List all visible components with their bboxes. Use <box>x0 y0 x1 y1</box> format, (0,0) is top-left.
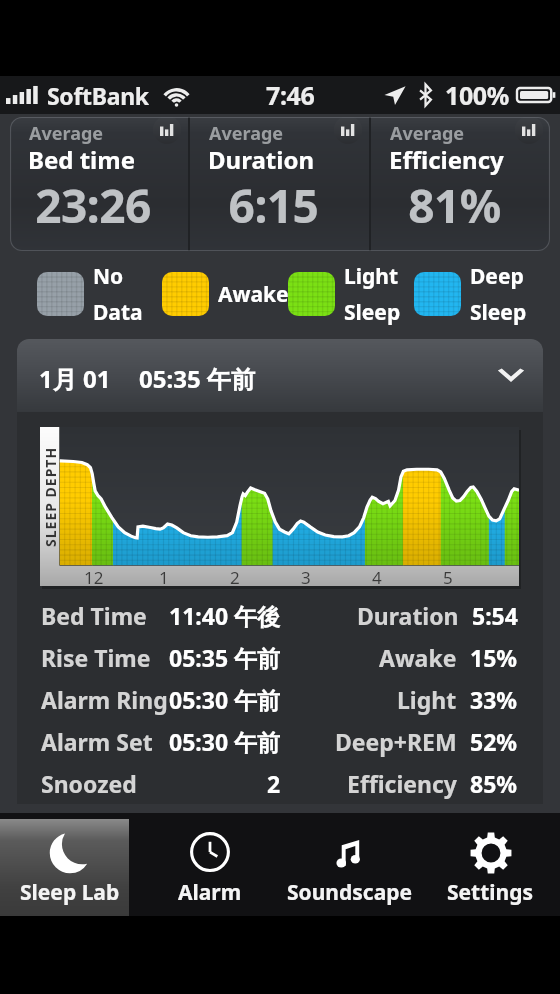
staticText: Duration <box>357 600 459 631</box>
staticText: Alarm Set <box>41 726 153 757</box>
button[interactable]: Show chart <box>334 117 362 144</box>
staticText: Average <box>29 121 104 146</box>
staticText: Rise Time <box>41 642 151 673</box>
staticText: 6:15 <box>190 174 357 237</box>
staticText: Average <box>209 121 284 146</box>
staticText: SLEEP DEPTH <box>41 446 60 547</box>
button[interactable]: Alarm Set <box>41 720 518 762</box>
staticText: 33% <box>470 684 518 715</box>
button[interactable]: Show chart <box>153 117 181 144</box>
staticText: No <box>93 262 124 291</box>
staticText: 1 <box>159 566 169 586</box>
button[interactable]: Average <box>371 117 550 251</box>
staticText: 05:35 午前 <box>139 362 255 395</box>
staticText: 52% <box>470 726 518 757</box>
staticText: 2 <box>267 768 281 799</box>
staticText: Sleep Lab <box>20 878 120 907</box>
staticText: Sleep <box>344 298 401 327</box>
button[interactable]: Snoozed <box>41 762 518 804</box>
staticText: Light <box>344 262 399 291</box>
staticText: 7:46 <box>266 78 315 112</box>
staticText: 15% <box>470 642 518 673</box>
button[interactable]: Show chart <box>515 117 543 144</box>
staticText: Awake <box>218 280 289 309</box>
button[interactable]: Deep <box>414 250 527 338</box>
staticText: 81% <box>371 174 538 237</box>
staticText: Deep <box>470 262 524 291</box>
button[interactable]: Alarm <box>140 813 280 916</box>
button[interactable]: Light <box>288 250 401 338</box>
button[interactable]: Alarm Ring <box>41 678 518 720</box>
staticText: 11:40 午後 <box>169 600 281 631</box>
button[interactable]: Bed Time <box>41 594 518 636</box>
staticText: Average <box>390 121 465 146</box>
button[interactable]: No <box>37 250 143 338</box>
staticText: SoftBank <box>47 80 149 111</box>
staticText: Duration <box>208 143 314 176</box>
staticText: Deep+REM <box>335 726 457 757</box>
other: Collapse <box>497 368 525 388</box>
staticText: 12 <box>84 566 104 586</box>
button[interactable]: Sleep Lab <box>0 813 140 916</box>
staticText: 3 <box>301 566 311 586</box>
button[interactable]: Average <box>190 117 369 251</box>
staticText: 100% <box>445 78 509 112</box>
staticText: 4 <box>372 566 382 586</box>
staticText: Efficiency <box>389 143 504 176</box>
staticText: Data <box>93 298 143 327</box>
button[interactable]: Settings <box>420 813 560 916</box>
staticText: Efficiency <box>347 768 457 799</box>
staticText: Light <box>397 684 457 715</box>
staticText: 5:54 <box>472 600 518 631</box>
button[interactable]: Average <box>10 117 188 251</box>
button[interactable]: Awake <box>162 250 289 338</box>
staticText: 85% <box>470 768 518 799</box>
staticText: 05:30 午前 <box>169 726 281 757</box>
button[interactable]: 1月 01 <box>17 339 543 412</box>
staticText: Awake <box>379 642 457 673</box>
staticText: Bed time <box>28 143 136 176</box>
button[interactable]: Rise Time <box>41 636 518 678</box>
staticText: Soundscape <box>287 878 413 907</box>
staticText: Snoozed <box>41 768 137 799</box>
staticText: Bed Time <box>41 600 147 631</box>
staticText: Settings <box>447 878 534 907</box>
staticText: 2 <box>230 566 240 586</box>
staticText: 1月 01 <box>39 362 111 395</box>
staticText: 23:26 <box>10 174 176 237</box>
staticText: 5 <box>443 566 453 586</box>
staticText: 05:30 午前 <box>169 684 281 715</box>
staticText: Alarm Ring <box>41 684 168 715</box>
staticText: 05:35 午前 <box>169 642 281 673</box>
button[interactable]: Soundscape <box>280 813 420 916</box>
staticText: Alarm <box>178 878 242 907</box>
staticText: Sleep <box>470 298 527 327</box>
